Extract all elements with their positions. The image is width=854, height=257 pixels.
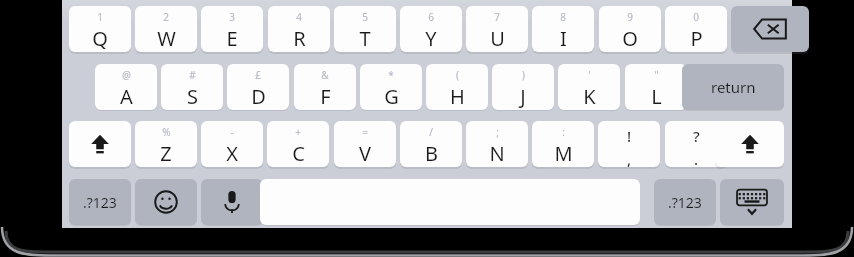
staticText: C [292,140,305,167]
button[interactable]: 1 [69,6,131,52]
staticText: R [293,25,306,52]
staticText: + [295,125,301,139]
button[interactable]: @ [95,64,157,110]
staticText: G [384,83,399,110]
button[interactable]: return [682,64,784,110]
staticText: 6 [428,10,434,24]
button[interactable]: 2 [135,6,197,52]
button[interactable]: Dictate [201,179,263,225]
staticText: F [320,83,331,110]
staticText: N [489,140,505,167]
button[interactable]: * [360,64,422,110]
button[interactable]: Hide keyboard [720,179,784,225]
staticText: ; [496,125,499,139]
button[interactable]: ! [598,121,660,167]
staticText: return [711,77,756,97]
staticText: : [562,125,565,139]
button[interactable]: % [135,121,197,167]
staticText: ! [627,126,632,146]
button[interactable]: .?123 [654,179,716,225]
button[interactable]: ; [466,121,528,167]
staticText: X [226,140,238,167]
button[interactable]: 9 [599,6,661,52]
button[interactable]: £ [227,64,289,110]
staticText: 4 [296,10,302,24]
staticText: A [120,83,133,110]
button[interactable]: Backspace [731,6,809,52]
button[interactable]: " [625,64,687,110]
staticText: 7 [494,10,500,24]
staticText: K [583,83,596,110]
staticText: D [251,83,266,110]
button[interactable]: ( [426,64,488,110]
staticText: 9 [627,10,633,24]
staticText: P [690,25,703,52]
button[interactable]: - [201,121,263,167]
staticText: , [627,149,632,167]
staticText: / [429,125,433,139]
staticText: 3 [229,10,235,24]
staticText: I [560,25,567,52]
staticText: Z [160,140,172,167]
staticText: 1 [97,10,103,24]
staticText: J [520,83,526,110]
button[interactable]: 8 [532,6,594,52]
button[interactable]: 5 [334,6,396,52]
staticText: * [388,68,394,82]
button[interactable]: : [532,121,594,167]
staticText: " [654,68,659,82]
button[interactable]: 0 [665,6,727,52]
staticText: V [359,140,371,167]
button[interactable]: ) [492,64,554,110]
staticText: # [189,68,196,82]
button[interactable]: ' [558,64,620,110]
staticText: T [359,25,371,52]
staticText: Y [425,25,437,52]
staticText: S [187,83,198,110]
staticText: B [425,140,438,167]
staticText: H [450,83,465,110]
staticText: U [490,25,505,52]
staticText: ? [693,126,700,146]
button[interactable]: & [294,64,356,110]
staticText: 5 [362,10,368,24]
staticText: ' [588,68,591,82]
staticText: . [694,149,699,167]
staticText: & [321,68,329,82]
staticText: ( [456,68,459,82]
button[interactable]: Shift [715,121,784,167]
button[interactable]: 4 [268,6,330,52]
button[interactable]: 6 [400,6,462,52]
staticText: 8 [560,10,566,24]
staticText: .?123 [83,193,117,212]
staticText: O [622,25,638,52]
staticText: W [157,25,176,52]
staticText: 0 [693,10,699,24]
staticText: % [162,125,171,139]
staticText: @ [122,68,131,82]
button[interactable]: 7 [466,6,528,52]
button[interactable]: = [334,121,396,167]
staticText: ) [522,68,525,82]
button[interactable]: + [267,121,329,167]
staticText: L [651,83,662,110]
staticText: £ [255,68,261,82]
button[interactable]: # [161,64,223,110]
staticText: .?123 [668,193,702,212]
button[interactable]: Emoji [135,179,197,225]
staticText: E [226,25,238,52]
button[interactable]: Shift [69,121,131,167]
staticText: = [362,125,368,139]
button[interactable]: / [400,121,462,167]
staticText: 2 [163,10,169,24]
button[interactable]: 3 [201,6,263,52]
staticText: M [554,140,573,167]
button[interactable]: ? [665,121,727,167]
staticText: - [230,125,234,139]
staticText: Q [92,25,108,52]
button[interactable]: .?123 [69,179,131,225]
